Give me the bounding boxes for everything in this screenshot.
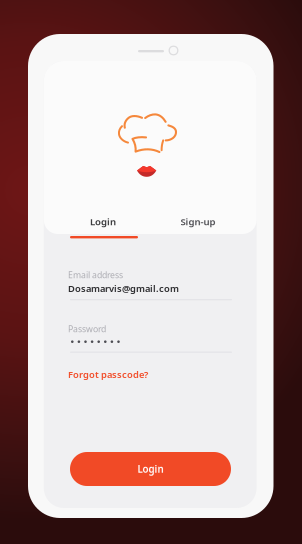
button[interactable]: Login [70,452,231,486]
staticText: Forgot passcode? [68,368,148,381]
staticText: Password [68,323,106,335]
staticText: Login [90,215,116,228]
button[interactable]: Login [68,210,138,232]
staticText: Email address [68,269,123,281]
staticText: Sign-up [180,215,215,228]
staticText: Login [137,462,163,476]
staticText: Dosamarvis@gmail.com [68,282,179,295]
button[interactable]: Forgot passcode? [68,368,152,380]
button[interactable]: Sign-up [163,210,233,232]
